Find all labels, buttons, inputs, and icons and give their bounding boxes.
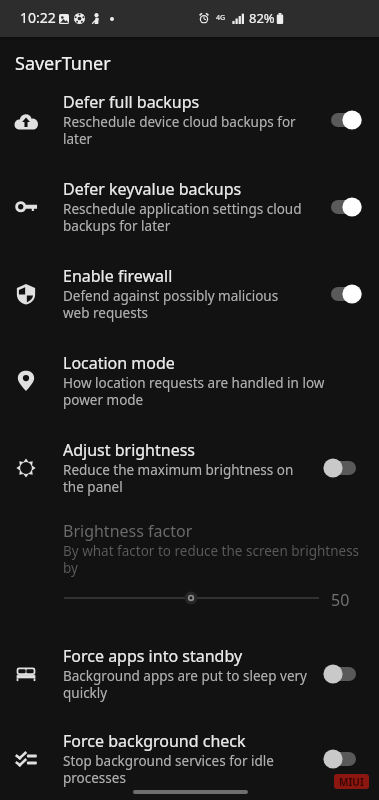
button[interactable]: Toggle off — [323, 650, 379, 698]
button[interactable]: Defer keyvalue backups — [0, 163, 379, 250]
staticText: Defend against possibly malicious web re… — [63, 287, 279, 322]
staticText: Reschedule device cloud backups for late… — [63, 113, 296, 148]
button[interactable]: Adjust brightness — [0, 424, 379, 511]
button[interactable]: Defer full backups — [0, 76, 379, 163]
staticText: How location requests are handled in low… — [63, 374, 325, 409]
staticText: 50 — [331, 589, 350, 611]
staticText: Reduce the maximum brightness on the pan… — [63, 461, 294, 496]
button[interactable]: Toggle on — [323, 96, 379, 144]
staticText: Adjust brightness — [63, 439, 196, 461]
staticText: SaverTuner — [15, 51, 111, 76]
staticText: Location mode — [63, 352, 175, 374]
staticText: Defer keyvalue backups — [63, 178, 242, 200]
button[interactable]: Brightness factor — [0, 511, 379, 630]
staticText: Enable firewall — [63, 265, 173, 287]
staticText: By what factor to reduce the screen brig… — [63, 542, 360, 577]
button[interactable]: Toggle on — [323, 270, 379, 318]
staticText: MIUI — [339, 775, 364, 789]
staticText: Background apps are put to sleep very qu… — [63, 667, 307, 702]
button[interactable]: Toggle on — [323, 183, 379, 231]
staticText: 10:22 — [20, 8, 56, 27]
staticText: 82% — [249, 9, 275, 27]
staticText: Brightness factor — [63, 520, 193, 542]
button[interactable]: Location mode — [0, 337, 379, 424]
button[interactable]: Force apps into standby — [0, 630, 379, 717]
staticText: Stop background services for idle proces… — [63, 752, 274, 787]
button[interactable]: Force background check — [0, 717, 379, 800]
button[interactable]: Toggle off — [323, 735, 379, 783]
button[interactable]: Enable firewall — [0, 250, 379, 337]
staticText: Reschedule application settings cloud ba… — [63, 200, 302, 235]
staticText: Defer full backups — [63, 91, 200, 113]
staticText: Force apps into standby — [63, 645, 243, 667]
staticText: 4G — [216, 13, 226, 23]
staticText: Force background check — [63, 730, 246, 752]
button[interactable]: Toggle off — [323, 444, 379, 492]
